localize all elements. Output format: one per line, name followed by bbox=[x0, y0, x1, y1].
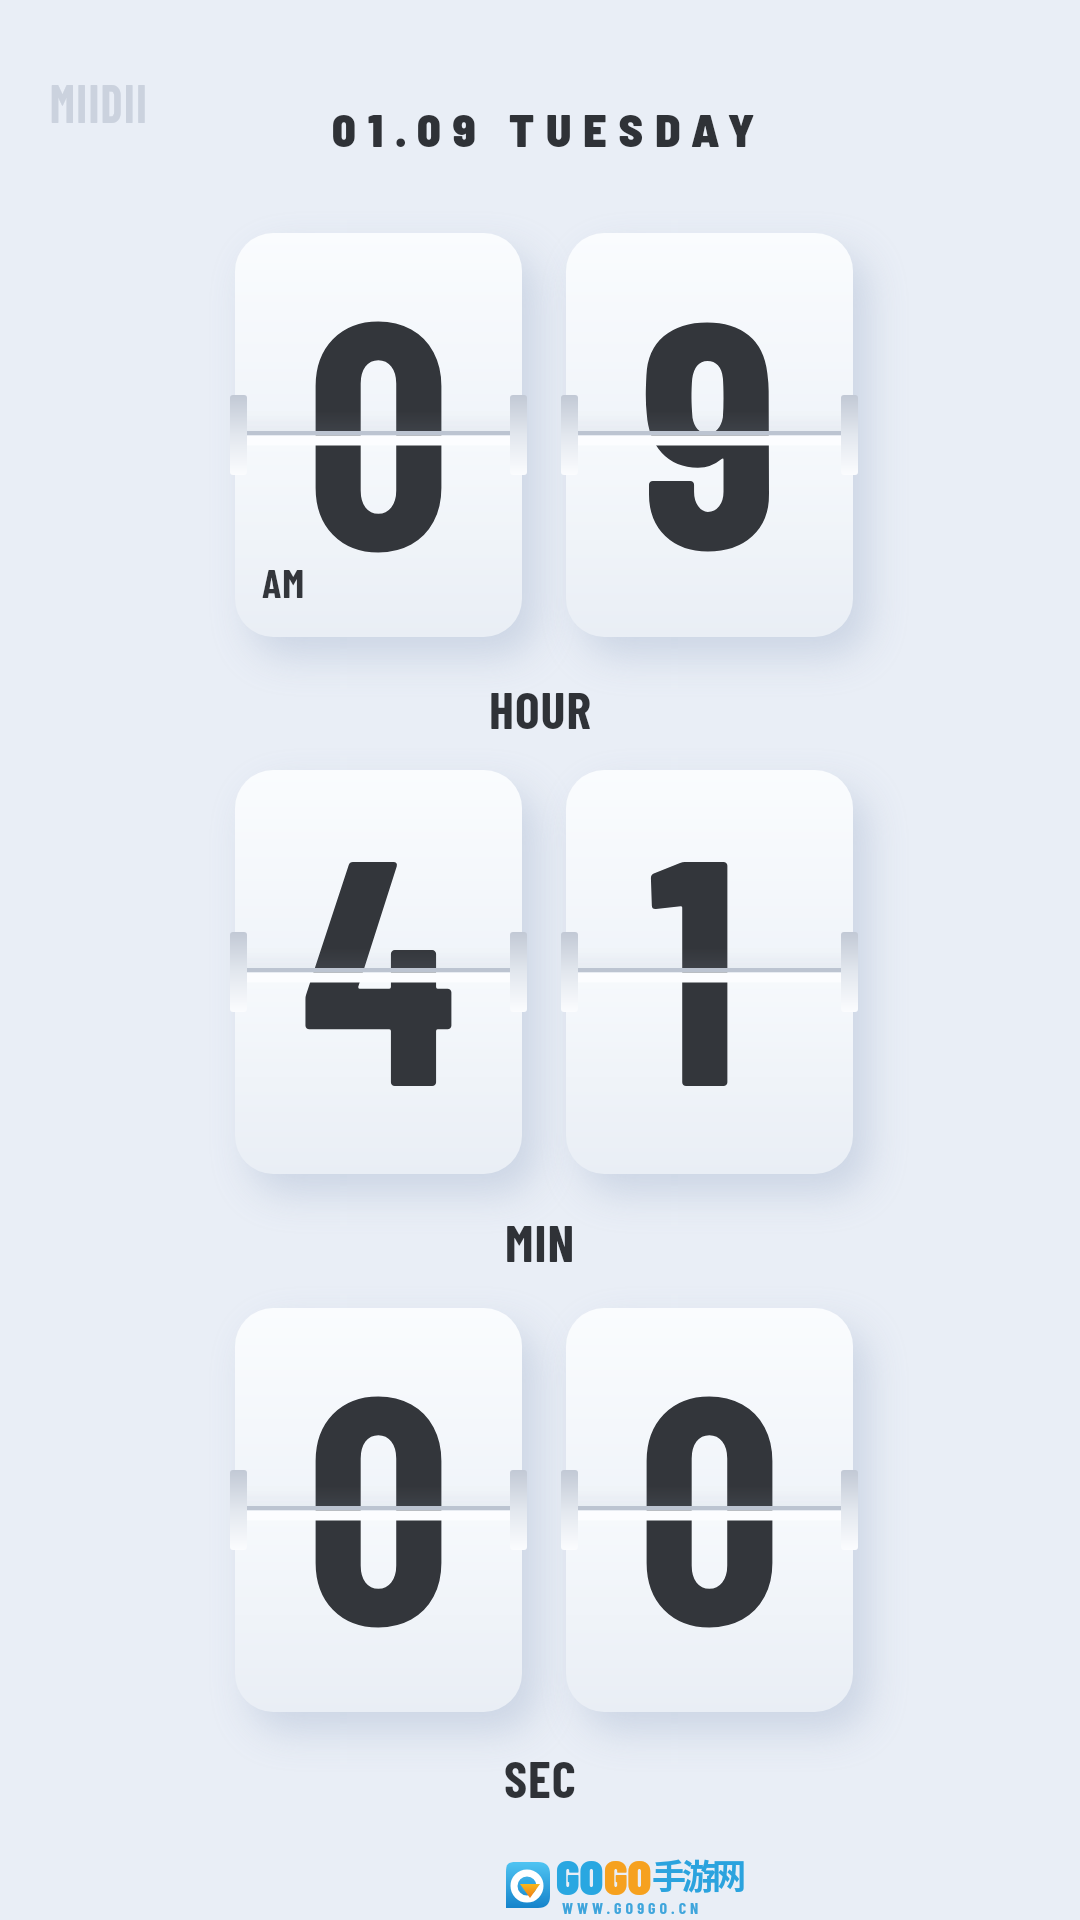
staticText: WWW.GO9GO.CN bbox=[562, 1898, 703, 1917]
staticText: 1 bbox=[648, 770, 739, 1150]
staticText: HOUR bbox=[489, 677, 592, 739]
staticText: MIN bbox=[505, 1210, 576, 1272]
staticText: SEC bbox=[504, 1746, 577, 1808]
staticText: AM bbox=[262, 558, 306, 606]
button[interactable]: 0 bbox=[235, 233, 522, 637]
staticText: 0 bbox=[306, 1308, 451, 1688]
staticText: 01.09 TUESDAY bbox=[332, 101, 767, 156]
button[interactable]: 9 bbox=[566, 233, 853, 637]
button[interactable]: 4 bbox=[235, 770, 522, 1174]
staticText: 4 bbox=[301, 770, 456, 1150]
staticText: 9 bbox=[640, 233, 780, 613]
staticText: MIIDII bbox=[50, 69, 148, 134]
staticText: GO bbox=[556, 1846, 604, 1905]
staticText: GO bbox=[604, 1846, 652, 1905]
button[interactable]: 1 bbox=[566, 770, 853, 1174]
staticText: 手游网 bbox=[652, 1850, 742, 1899]
staticText: 0 bbox=[306, 233, 451, 613]
staticText: 0 bbox=[637, 1308, 782, 1688]
button[interactable]: 0 bbox=[235, 1308, 522, 1712]
button[interactable]: 0 bbox=[566, 1308, 853, 1712]
button[interactable] bbox=[506, 1862, 550, 1908]
